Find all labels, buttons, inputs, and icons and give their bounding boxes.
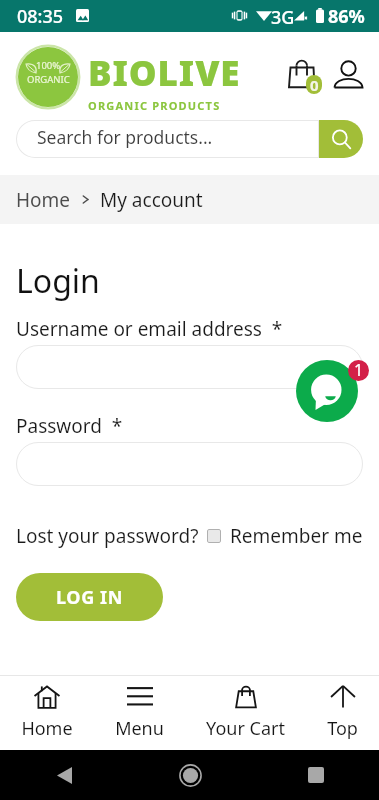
- staticText: Top: [327, 716, 358, 741]
- staticText: Password *: [16, 413, 123, 439]
- button[interactable]: Search: [319, 120, 363, 158]
- staticText: Login: [16, 259, 100, 303]
- staticText: Remember me: [230, 523, 363, 549]
- staticText: 100%: [36, 59, 61, 72]
- staticText: Home: [21, 716, 73, 741]
- button[interactable]: Your Cart: [206, 676, 285, 750]
- button[interactable]: Back: [46, 757, 82, 793]
- button[interactable]: Home: [16, 187, 71, 213]
- button[interactable]: [16, 442, 363, 486]
- staticText: My account: [100, 187, 203, 213]
- staticText: Menu: [115, 716, 164, 741]
- staticText: Search for products...: [37, 125, 213, 149]
- button[interactable]: Lost your password?: [16, 523, 199, 549]
- staticText: BIOLIVE: [88, 49, 241, 97]
- button[interactable]: Home: [172, 757, 208, 793]
- staticText: 08:35: [17, 4, 64, 29]
- button[interactable]: Home: [21, 676, 73, 750]
- button[interactable]: Recent apps: [298, 757, 334, 793]
- button[interactable]: Search for products...: [16, 120, 319, 158]
- button[interactable]: My account: [330, 55, 368, 99]
- staticText: 3G: [271, 5, 295, 30]
- button[interactable]: [16, 345, 363, 389]
- staticText: 86%: [328, 4, 365, 29]
- button[interactable]: LOG IN: [16, 573, 163, 621]
- staticText: ORGANIC PRODUCTS: [88, 98, 221, 113]
- button[interactable]: Shopping cart: [283, 55, 325, 99]
- button[interactable]: Chat: [296, 360, 358, 422]
- staticText: Username or email address *: [16, 316, 283, 342]
- staticText: ORGANIC: [27, 73, 70, 86]
- button[interactable]: Remember me: [207, 523, 363, 549]
- staticText: LOG IN: [56, 585, 123, 610]
- staticText: 1: [354, 360, 364, 380]
- button[interactable]: Menu: [115, 676, 164, 750]
- button[interactable]: Top: [327, 676, 358, 750]
- staticText: 0: [310, 75, 319, 94]
- staticText: Your Cart: [206, 716, 285, 741]
